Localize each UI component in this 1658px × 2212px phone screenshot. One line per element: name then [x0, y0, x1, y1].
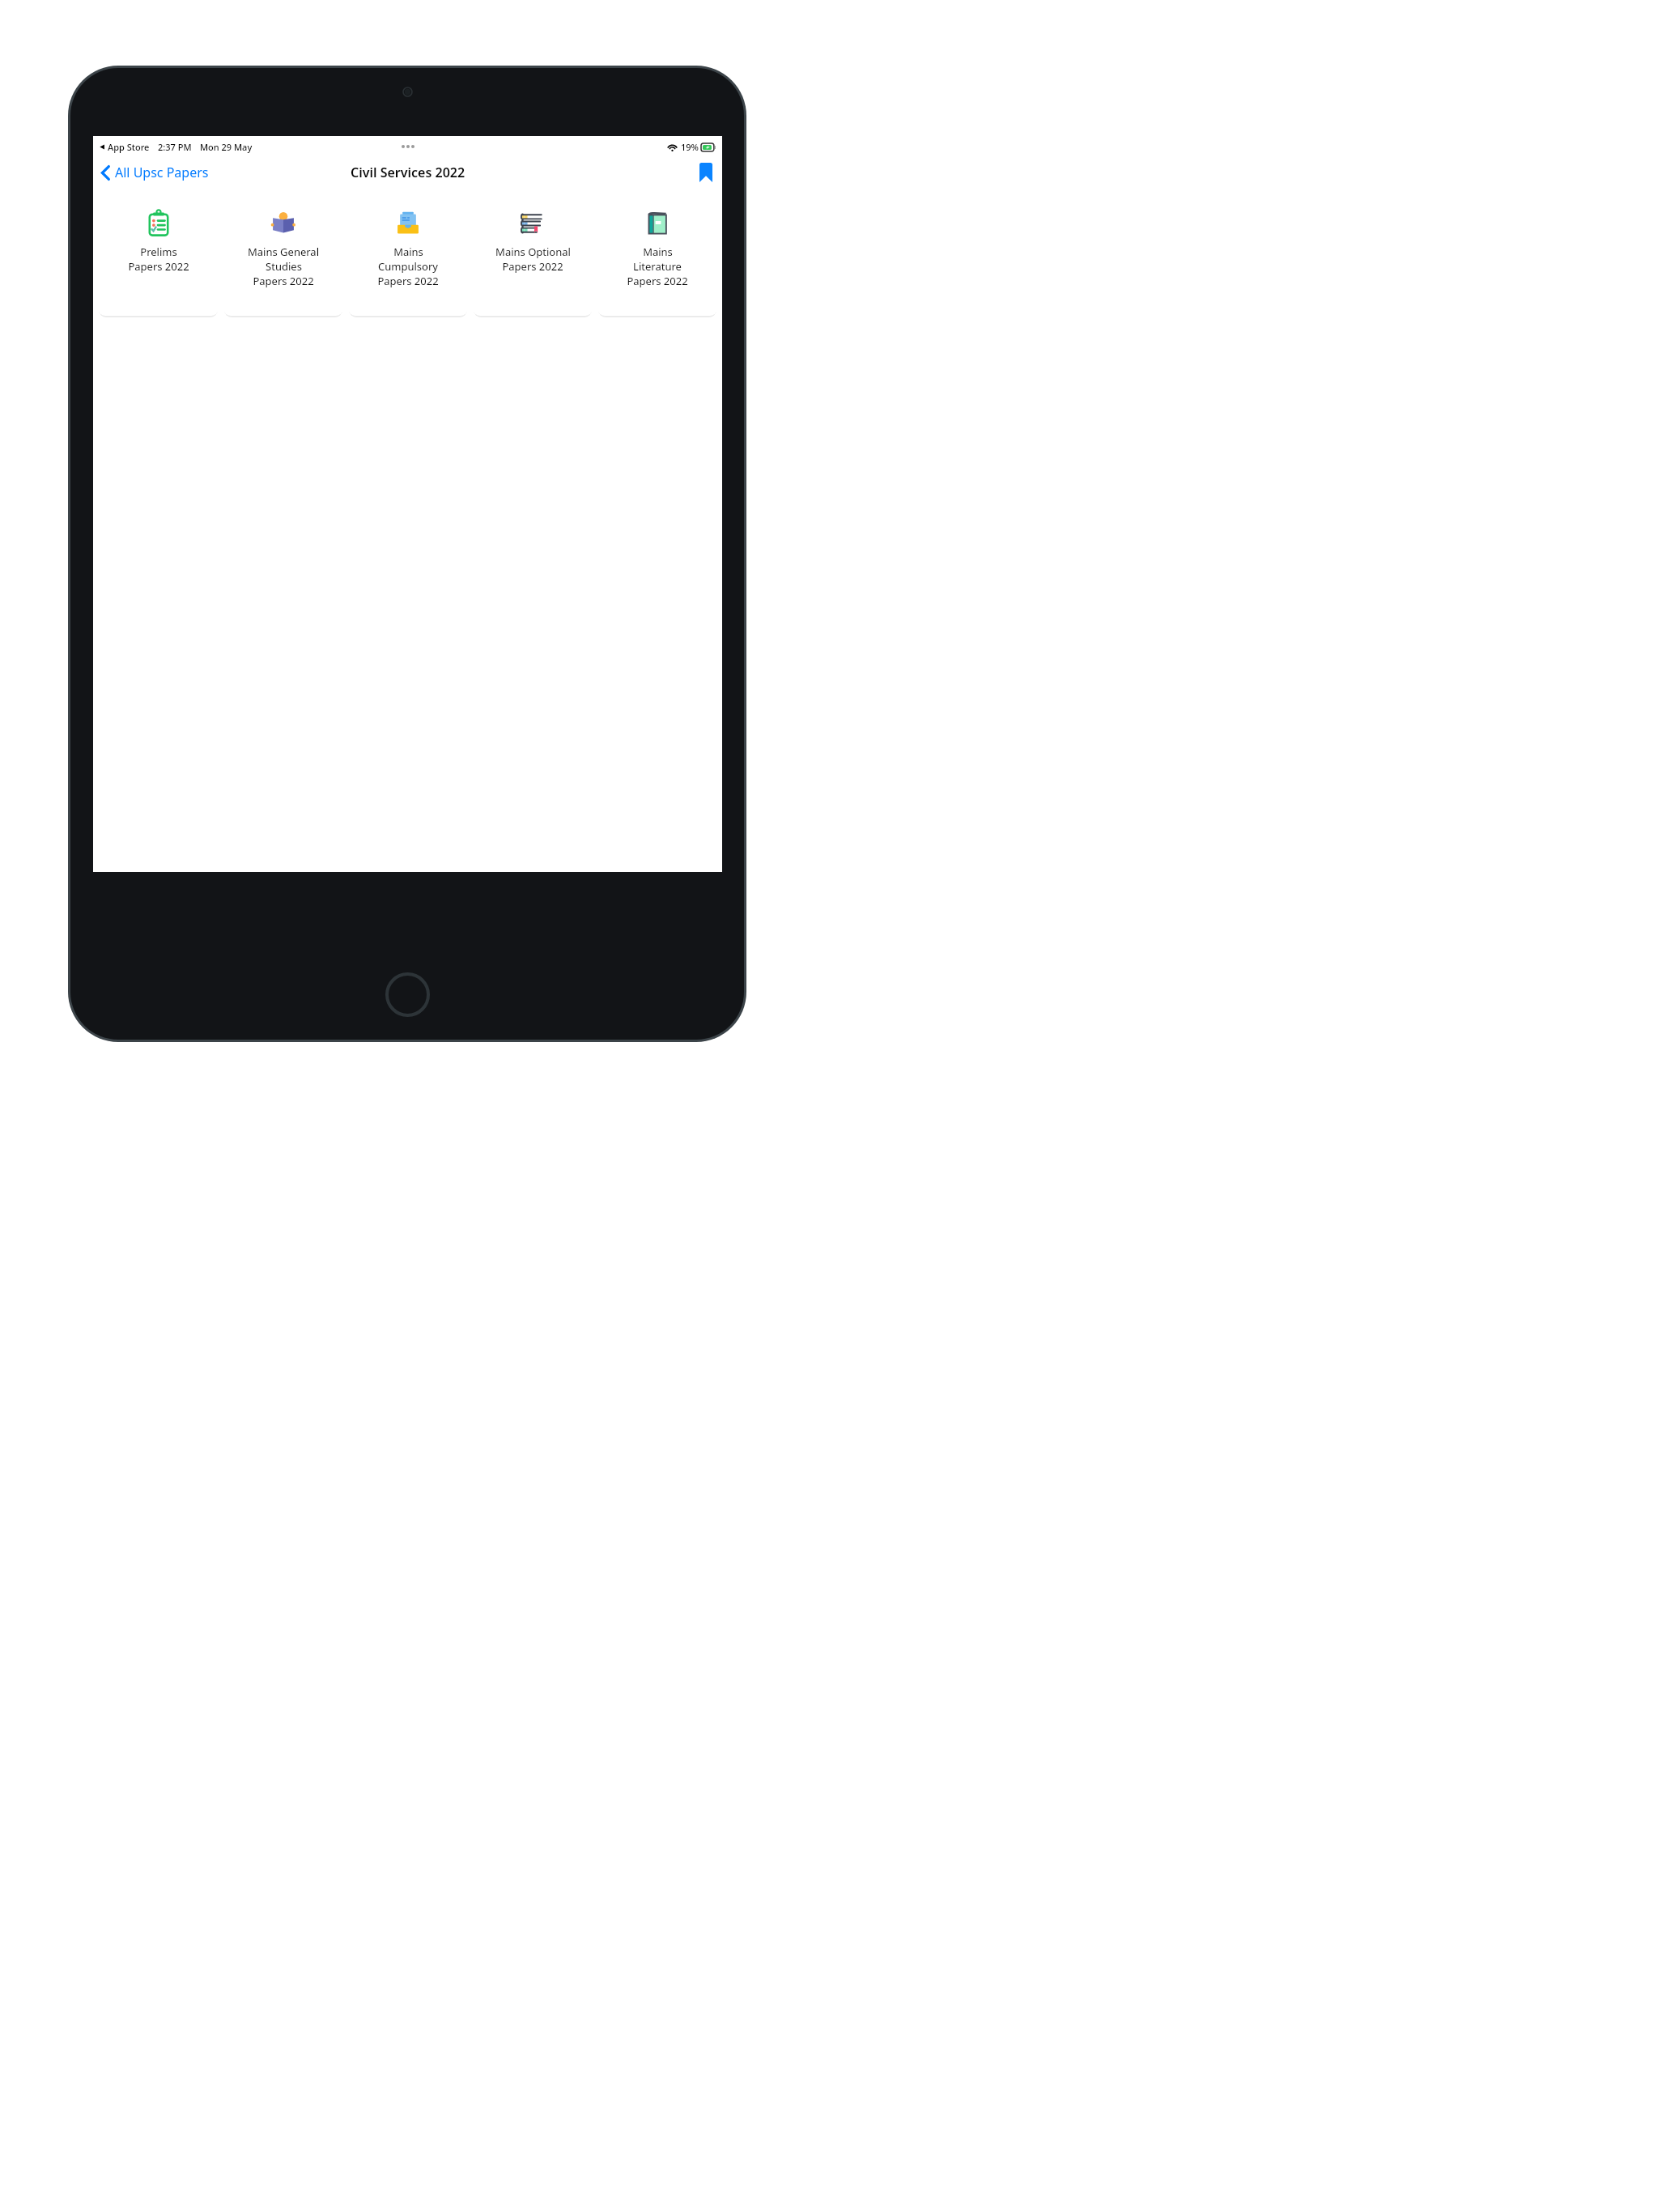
staticText: Literature	[633, 259, 682, 274]
staticText: Mains	[393, 245, 423, 259]
staticText: App Store	[108, 141, 150, 153]
staticText: Mains General	[248, 245, 319, 259]
staticText: Papers 2022	[502, 259, 563, 274]
staticText: 19%	[681, 141, 699, 153]
staticText: Mon 29 May	[200, 141, 253, 153]
button[interactable]: Mains	[348, 194, 468, 316]
staticText: Mains	[643, 245, 673, 259]
button[interactable]: Mains	[597, 194, 717, 316]
staticText: Papers 2022	[128, 259, 189, 274]
button[interactable]: Prelims	[98, 194, 219, 316]
staticText: Papers 2022	[253, 274, 314, 288]
staticText: Civil Services 2022	[351, 164, 466, 181]
other: Home	[385, 972, 430, 1017]
button[interactable]: Bookmark	[696, 160, 716, 185]
staticText: Papers 2022	[377, 274, 439, 288]
staticText: All Upsc Papers	[115, 164, 209, 181]
staticText: Prelims	[140, 245, 177, 259]
staticText: Papers 2022	[627, 274, 688, 288]
button[interactable]: All Upsc Papers	[96, 160, 214, 185]
staticText: Cumpulsory	[378, 259, 438, 274]
staticText: Mains Optional	[495, 245, 571, 259]
staticText: 2:37 PM	[158, 141, 192, 153]
staticText: Studies	[266, 259, 302, 274]
button[interactable]: Mains General	[223, 194, 343, 316]
button[interactable]: Mains Optional	[473, 194, 593, 316]
